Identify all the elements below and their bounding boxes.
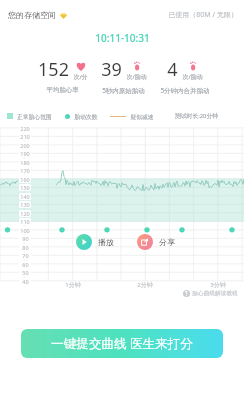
staticText: 次/胎动 [126,73,147,81]
staticText: 120 [20,210,30,217]
staticText: 39 [101,57,122,82]
button[interactable]: 一键提交曲线 医生来打分 [21,329,223,358]
button[interactable]: 您的存储空间 [8,10,68,20]
staticText: 分享 [159,237,175,247]
staticText: 100 [20,227,30,234]
staticText: 80 [22,244,29,251]
staticText: 170 [20,167,30,174]
staticText: 一键提交曲线 医生来打分 [51,335,193,352]
staticText: 210 [20,133,30,140]
staticText: 5分钟内合并胎动 [160,86,210,95]
staticText: 152 [38,57,69,82]
button[interactable]: 4 [154,57,215,95]
staticText: 220 [20,125,30,132]
staticText: 5秒内原始胎动 [102,86,145,95]
staticText: 1分钟 [65,281,81,289]
staticText: 胎心曲线解读教程 [192,290,238,297]
staticText: 150 [20,184,30,191]
staticText: 胎动次数 [74,113,98,120]
staticText: 90 [22,235,29,242]
staticText: 平均胎心率 [46,86,79,94]
staticText: 2分钟 [137,281,153,289]
button[interactable]: 39 [93,57,154,95]
staticText: 次/胎动 [182,73,203,81]
staticText: 3分钟 [210,281,226,289]
staticText: 60 [22,261,29,268]
staticText: 播放 [98,237,114,247]
staticText: 疑似减速 [130,113,154,120]
staticText: 180 [20,159,30,166]
staticText: 已使用（80M / 无限） [168,10,238,20]
staticText: 200 [20,142,30,149]
staticText: 40 [22,278,29,285]
button[interactable]: 播放 [76,234,114,250]
staticText: 190 [20,150,30,157]
staticText: 70 [22,252,29,259]
staticText: 正常胎心范围 [17,113,52,120]
staticText: 10:11-10:31 [95,31,150,45]
staticText: 50 [22,269,29,276]
button[interactable]: 152 [32,57,93,94]
button[interactable]: 胎心曲线解读教程 [183,289,238,298]
staticText: 4 [167,57,178,82]
staticText: 160 [20,176,30,183]
staticText: 次/分 [73,73,88,81]
staticText: 130 [20,201,30,208]
staticText: 140 [20,193,30,200]
staticText: 110 [20,218,30,225]
staticText: 测试时长:20分钟 [175,112,218,120]
button[interactable]: 分享 [137,234,175,250]
staticText: 您的存储空间 [8,10,56,20]
